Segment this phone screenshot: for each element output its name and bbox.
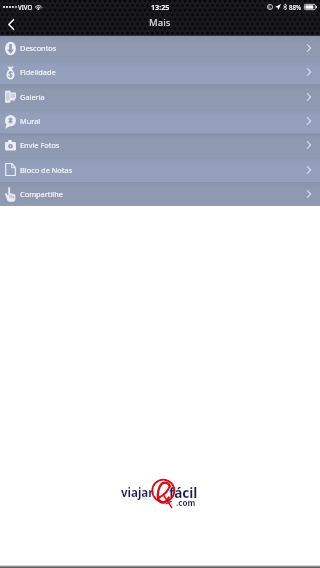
button[interactable]: Galeria: [0, 84, 320, 109]
staticText: VIVO: [18, 3, 33, 11]
staticText: 13:25: [151, 2, 170, 12]
button[interactable]: Envie Fotos: [0, 133, 320, 157]
button[interactable]: Bloco de Notas: [0, 157, 320, 182]
button[interactable]: Mural: [0, 109, 320, 133]
button[interactable]: Back: [0, 13, 22, 35]
button[interactable]: Compartilhe: [0, 182, 320, 206]
staticText: viajar: [121, 485, 154, 501]
staticText: Descontos: [20, 43, 57, 53]
staticText: Mural: [20, 116, 41, 126]
staticText: Envie Fotos: [20, 140, 60, 150]
staticText: 88%: [289, 3, 302, 11]
staticText: Fidelidade: [20, 67, 56, 77]
staticText: Mais: [149, 16, 171, 29]
staticText: fácil: [169, 484, 198, 502]
staticText: Bloco de Notas: [20, 165, 73, 175]
staticText: .com: [176, 497, 196, 508]
staticText: Galeria: [20, 92, 45, 102]
button[interactable]: Descontos: [0, 36, 320, 60]
staticText: Compartilhe: [20, 189, 64, 199]
button[interactable]: Fidelidade: [0, 60, 320, 84]
